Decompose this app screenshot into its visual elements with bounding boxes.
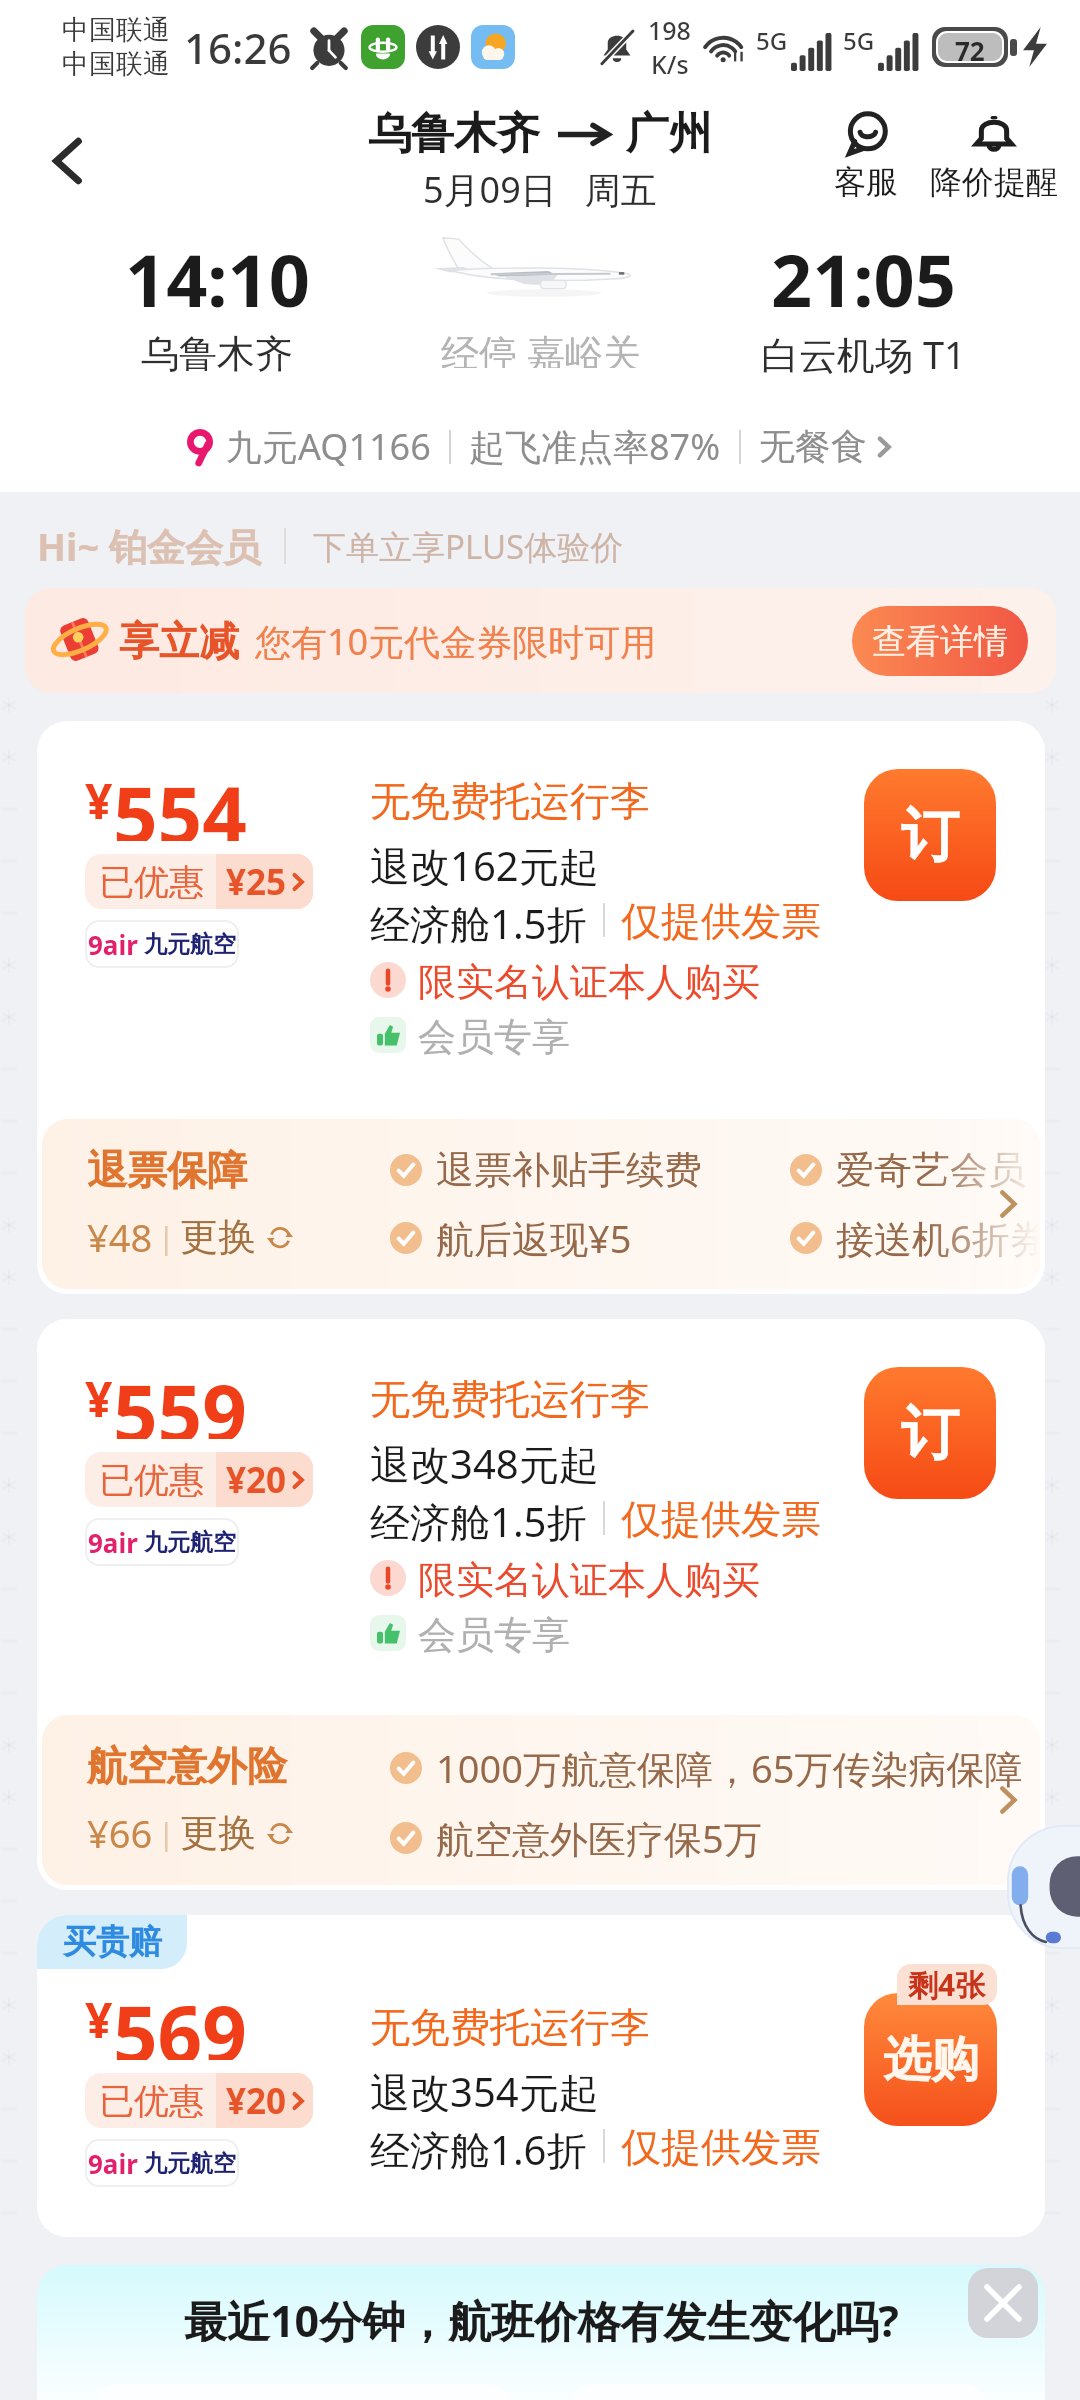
- staticText: 享立减: [119, 616, 239, 666]
- staticText: 仅提供发票: [621, 1494, 821, 1542]
- staticText: 客服: [834, 162, 898, 202]
- staticText: 中国联通: [62, 13, 170, 47]
- button[interactable]: AI assistant: [1008, 1826, 1080, 1952]
- staticText: ¥20: [226, 1456, 287, 1504]
- staticText: 16:26: [184, 19, 292, 76]
- staticText: 1000万航意保障，65万传染病保障: [436, 1742, 1023, 1794]
- staticText: 9air: [88, 927, 138, 962]
- staticText: 经停 嘉峪关: [441, 326, 641, 368]
- staticText: ¥66: [87, 1807, 153, 1859]
- staticText: 72: [955, 33, 985, 61]
- button[interactable]: 享立减: [25, 588, 1056, 693]
- staticText: 5G: [843, 24, 875, 57]
- staticText: 569: [113, 1980, 247, 2060]
- button[interactable]: 选购: [864, 1993, 997, 2126]
- staticText: 5月09日 周五: [423, 165, 657, 214]
- staticText: 经济舱1.6折: [370, 2122, 587, 2170]
- staticText: 经济舱1.5折: [370, 1494, 587, 1542]
- staticText: ¥: [85, 768, 113, 833]
- staticText: 航空意外险: [87, 1741, 287, 1791]
- staticText: 起飞准点率87%: [469, 422, 721, 471]
- staticText: 航空意外医疗保5万: [436, 1812, 762, 1864]
- staticText: 九元航空: [144, 930, 236, 959]
- staticText: ¥25: [226, 858, 287, 906]
- staticText: 无免费托运行李: [370, 1374, 650, 1422]
- button[interactable]: 订: [864, 769, 996, 901]
- button[interactable]: ¥: [37, 721, 1045, 1294]
- button[interactable]: 订: [864, 1367, 996, 1499]
- button[interactable]: 已优惠: [85, 2073, 313, 2128]
- staticText: 九元航空: [144, 2149, 236, 2178]
- staticText: 198: [648, 13, 691, 47]
- staticText: 买贵赔: [63, 1921, 162, 1963]
- staticText: K/s: [651, 47, 689, 81]
- staticText: 查看详情: [872, 620, 1008, 663]
- staticText: 已优惠: [99, 1458, 204, 1502]
- staticText: 经济舱1.5折: [370, 896, 587, 944]
- button[interactable]: Back: [26, 118, 112, 204]
- staticText: 14:10: [125, 230, 310, 320]
- staticText: 九元AQ1166: [226, 422, 431, 471]
- staticText: 更换: [180, 1213, 256, 1261]
- staticText: 订: [901, 799, 959, 872]
- staticText: 广州: [626, 107, 712, 161]
- button[interactable]: 九元AQ1166: [174, 418, 907, 475]
- staticText: 退改348元起: [370, 1436, 599, 1484]
- staticText: 已优惠: [99, 2079, 204, 2123]
- staticText: 九元航空: [144, 1528, 236, 1557]
- staticText: ¥48: [87, 1211, 153, 1263]
- staticText: 最近10分钟，航班价格有发生变化吗?: [184, 2291, 899, 2350]
- button[interactable]: 买贵赔: [37, 1915, 1045, 2237]
- button[interactable]: 已优惠: [85, 854, 313, 909]
- staticText: 爱奇艺会员: [836, 1146, 1026, 1194]
- staticText: 选购: [883, 2030, 979, 2090]
- staticText: 退改354元起: [370, 2064, 599, 2112]
- button[interactable]: Close: [968, 2268, 1038, 2338]
- staticText: ¥: [85, 1366, 113, 1431]
- staticText: 554: [113, 761, 247, 841]
- staticText: 订: [901, 1397, 959, 1470]
- staticText: 无餐食: [759, 424, 867, 469]
- staticText: 已优惠: [99, 860, 204, 904]
- staticText: 9air: [88, 1525, 138, 1560]
- staticText: 仅提供发票: [621, 896, 821, 944]
- staticText: 降价提醒: [930, 162, 1058, 202]
- staticText: 559: [113, 1359, 247, 1439]
- staticText: 白云机场 T1: [761, 328, 966, 380]
- staticText: 下单立享PLUS体验价: [313, 524, 624, 569]
- staticText: 乌鲁木齐: [368, 107, 540, 161]
- staticText: 限实名认证本人购买: [418, 958, 760, 1002]
- staticText: 您有10元代金券限时可用: [255, 617, 657, 666]
- button[interactable]: 查看详情: [852, 606, 1028, 676]
- button[interactable]: 航空意外险: [42, 1715, 1040, 1885]
- staticText: 无免费托运行李: [370, 776, 650, 824]
- staticText: 限实名认证本人购买: [418, 1556, 760, 1600]
- staticText: 会员专享: [418, 1013, 570, 1057]
- staticText: 退票补贴手续费: [436, 1146, 702, 1194]
- button[interactable]: 已优惠: [85, 1452, 313, 1507]
- staticText: 退票保障: [87, 1145, 247, 1195]
- button[interactable]: 退票保障: [42, 1119, 1040, 1289]
- staticText: 会员专享: [418, 1611, 570, 1655]
- staticText: 中国联通: [62, 47, 170, 81]
- staticText: 剩4张: [908, 1964, 986, 2005]
- staticText: 乌鲁木齐: [141, 330, 293, 378]
- staticText: 5G: [756, 24, 788, 57]
- staticText: 9air: [88, 2146, 138, 2181]
- staticText: |: [158, 1217, 175, 1258]
- staticText: ¥20: [226, 2077, 287, 2125]
- staticText: |: [158, 1813, 175, 1854]
- staticText: 21:05: [771, 230, 956, 320]
- staticText: 退改162元起: [370, 838, 599, 886]
- staticText: ¥: [85, 1987, 113, 2052]
- button[interactable]: 客服: [828, 112, 904, 202]
- button[interactable]: ¥: [37, 1319, 1045, 1890]
- staticText: Hi~ 铂金会员: [37, 520, 262, 572]
- staticText: 航后返现¥5: [436, 1212, 632, 1264]
- staticText: 仅提供发票: [621, 2122, 821, 2170]
- staticText: 无免费托运行李: [370, 2002, 650, 2050]
- staticText: 更换: [180, 1809, 256, 1857]
- button[interactable]: 降价提醒: [924, 112, 1064, 202]
